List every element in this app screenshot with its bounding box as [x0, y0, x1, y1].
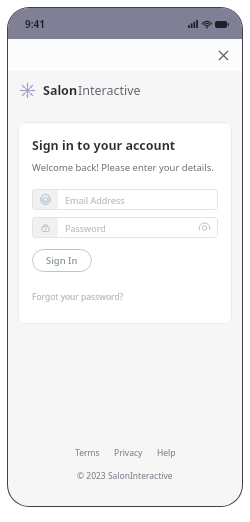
- staticText: Forgot your password?: [32, 291, 124, 303]
- staticText: Privacy: [114, 447, 143, 459]
- staticText: Terms: [75, 447, 100, 459]
- staticText: Welcome back! Please enter your details.: [32, 161, 214, 174]
- staticText: Help: [157, 447, 176, 459]
- staticText: Sign in to your account: [32, 137, 176, 154]
- staticText: Salon: [43, 82, 78, 99]
- button[interactable]: Privacy: [107, 445, 150, 461]
- staticText: Password: [65, 222, 106, 234]
- button[interactable]: Help: [150, 445, 183, 461]
- staticText: Interactive: [78, 82, 141, 99]
- staticText: 9:41: [25, 17, 45, 31]
- staticText: Email Address: [65, 194, 125, 206]
- staticText: Sign In: [46, 254, 78, 267]
- button[interactable]: Email Address: [32, 189, 218, 210]
- staticText: © 2023 SalonInteractive: [77, 470, 173, 482]
- button[interactable]: Close: [212, 44, 234, 66]
- button[interactable]: Show password: [198, 221, 211, 234]
- button[interactable]: Terms: [68, 445, 107, 461]
- button[interactable]: Sign In: [32, 249, 92, 272]
- button[interactable]: Forgot your password?: [32, 291, 124, 303]
- button[interactable]: Password: [32, 217, 218, 238]
